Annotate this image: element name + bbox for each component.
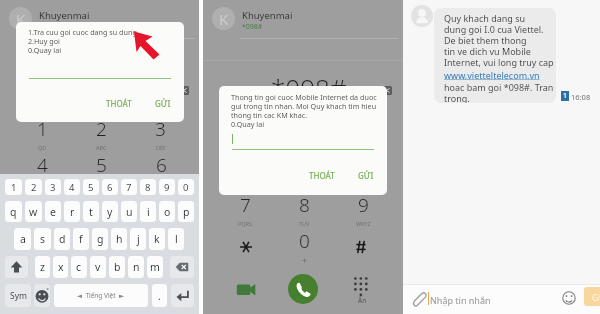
staticText: ABC [96, 144, 107, 151]
button[interactable]: 4 [13, 152, 72, 188]
button[interactable]: Emoji [34, 284, 50, 307]
button[interactable]: v [90, 256, 106, 278]
button[interactable]: 3 [45, 179, 61, 195]
button[interactable]: 8 [275, 192, 334, 228]
button[interactable]: r [64, 201, 80, 222]
button[interactable]: Shift [5, 256, 28, 278]
button[interactable]: s [34, 228, 51, 250]
button[interactable]: THOÁT [307, 168, 337, 183]
button[interactable]: y [102, 201, 118, 222]
button[interactable]: 7 [121, 179, 137, 195]
button[interactable]: 2 [72, 116, 131, 152]
button[interactable]: 0 [275, 228, 334, 264]
button[interactable]: a [14, 228, 31, 250]
button[interactable]: k [149, 228, 165, 250]
button[interactable]: Hide keypad [350, 274, 374, 306]
staticText: d [59, 232, 66, 246]
button[interactable]: f [73, 228, 89, 250]
staticText: f [79, 232, 83, 246]
button[interactable]: Video call [231, 278, 261, 302]
button[interactable]: . [152, 284, 167, 307]
button[interactable]: GỬI [153, 96, 173, 111]
button[interactable]: t [83, 201, 99, 222]
staticText: 6 [107, 181, 113, 194]
button[interactable]: c [71, 256, 87, 278]
staticText: i [147, 205, 150, 219]
staticText: *098# [271, 70, 347, 105]
button[interactable]: 4 [64, 179, 80, 195]
staticText: 2 [31, 181, 37, 194]
button[interactable]: 5 [72, 152, 131, 188]
button[interactable]: 2 [25, 179, 42, 195]
button[interactable]: Call [288, 274, 318, 304]
button[interactable]: d [54, 228, 70, 250]
button[interactable]: THOÁT [104, 96, 134, 111]
button[interactable]: Hash [351, 236, 371, 258]
staticText: *098# [242, 22, 263, 32]
button[interactable]: Emoji [561, 290, 577, 306]
staticText: Quy khach dang su dung goi I.0 cua Viett… [444, 12, 554, 69]
button[interactable]: 1 [13, 116, 72, 152]
button[interactable]: 1 [5, 179, 22, 195]
button[interactable]: 6 [131, 152, 190, 188]
button[interactable]: 9 [159, 179, 175, 195]
button[interactable]: l [168, 228, 184, 250]
staticText: Nhập tin nhắn [430, 294, 491, 306]
button[interactable]: e [45, 201, 61, 222]
button[interactable]: n [128, 256, 144, 278]
button[interactable]: Sym [5, 284, 31, 307]
button[interactable] [216, 228, 275, 264]
staticText: Thong tin goi cuoc Mobile Internet da du… [231, 92, 377, 129]
staticText: a [20, 232, 26, 246]
staticText: GỬI [155, 98, 171, 109]
button[interactable] [334, 228, 393, 264]
button[interactable]: q [5, 201, 22, 222]
staticText: 4 [69, 181, 75, 194]
staticText: o [164, 205, 171, 219]
staticText: JKL [98, 180, 106, 187]
staticText: y [107, 205, 113, 219]
button[interactable]: Close [381, 86, 392, 95]
button[interactable]: u [121, 201, 137, 222]
staticText: THOÁT [106, 98, 132, 109]
button[interactable]: 8 [140, 179, 156, 195]
staticText: 7 [126, 181, 132, 194]
staticText: v [95, 260, 101, 274]
staticText: www.vietteltelecom.vn [444, 69, 540, 81]
button[interactable]: z [35, 256, 50, 278]
button[interactable]: Quy khach dang su dung goi I.0 cua Viett… [434, 8, 556, 103]
button[interactable]: Enter [171, 284, 194, 307]
button[interactable]: 9 [334, 192, 393, 228]
button[interactable]: b [109, 256, 125, 278]
staticText: + [302, 254, 308, 264]
staticText: QD [38, 144, 47, 151]
staticText: 5 [96, 152, 107, 178]
button[interactable]: 0 [178, 179, 194, 195]
button[interactable]: ◄ Tiếng Việt ► [54, 284, 148, 307]
staticText: n [133, 260, 140, 274]
button[interactable]: GỬI [584, 287, 600, 306]
button[interactable]: p [178, 201, 194, 222]
button[interactable]: 3 [131, 116, 190, 152]
button[interactable]: w [25, 201, 42, 222]
button[interactable]: o [159, 201, 175, 222]
button[interactable]: m [147, 256, 163, 278]
button[interactable]: x [53, 256, 68, 278]
staticText: TUV [299, 220, 310, 227]
button[interactable]: Attach file [410, 290, 429, 309]
button[interactable]: j [130, 228, 146, 250]
button[interactable]: 5 [83, 179, 99, 195]
button[interactable]: g [92, 228, 108, 250]
button[interactable]: Close [178, 86, 189, 95]
button[interactable]: 6 [102, 179, 118, 195]
button[interactable]: i [140, 201, 156, 222]
staticText: t [89, 205, 93, 219]
button[interactable]: 7 [216, 192, 275, 228]
button[interactable]: GỬI [356, 168, 376, 183]
staticText: m [150, 260, 160, 274]
staticText: GỬI [592, 291, 600, 304]
button[interactable]: h [111, 228, 127, 250]
staticText: Khuyenmai [242, 9, 293, 22]
button[interactable]: Backspace [170, 256, 194, 278]
button[interactable]: Star [236, 236, 256, 258]
